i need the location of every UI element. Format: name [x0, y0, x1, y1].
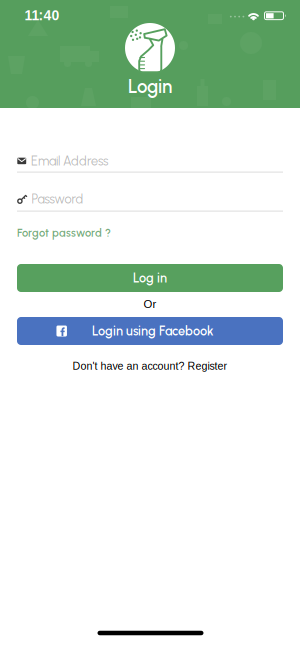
staticText: 11:40	[24, 8, 59, 23]
button[interactable]: Log in	[17, 264, 283, 292]
staticText: Register	[187, 360, 227, 372]
button[interactable]: Email Address	[0, 150, 300, 174]
staticText: Or	[143, 298, 156, 310]
staticText: Log in	[133, 270, 167, 286]
button[interactable]: Forgot password ?	[17, 226, 111, 240]
button[interactable]: Register	[187, 360, 227, 372]
button[interactable]: Password	[0, 188, 300, 213]
staticText: Login	[128, 75, 172, 98]
staticText: Login using Facebook	[92, 323, 214, 339]
button[interactable]: Login using Facebook	[17, 317, 283, 345]
staticText: Forgot password ?	[17, 226, 111, 240]
staticText: Don't have an account?	[72, 360, 184, 372]
staticText: Password	[31, 191, 83, 207]
staticText: Email Address	[31, 153, 108, 169]
